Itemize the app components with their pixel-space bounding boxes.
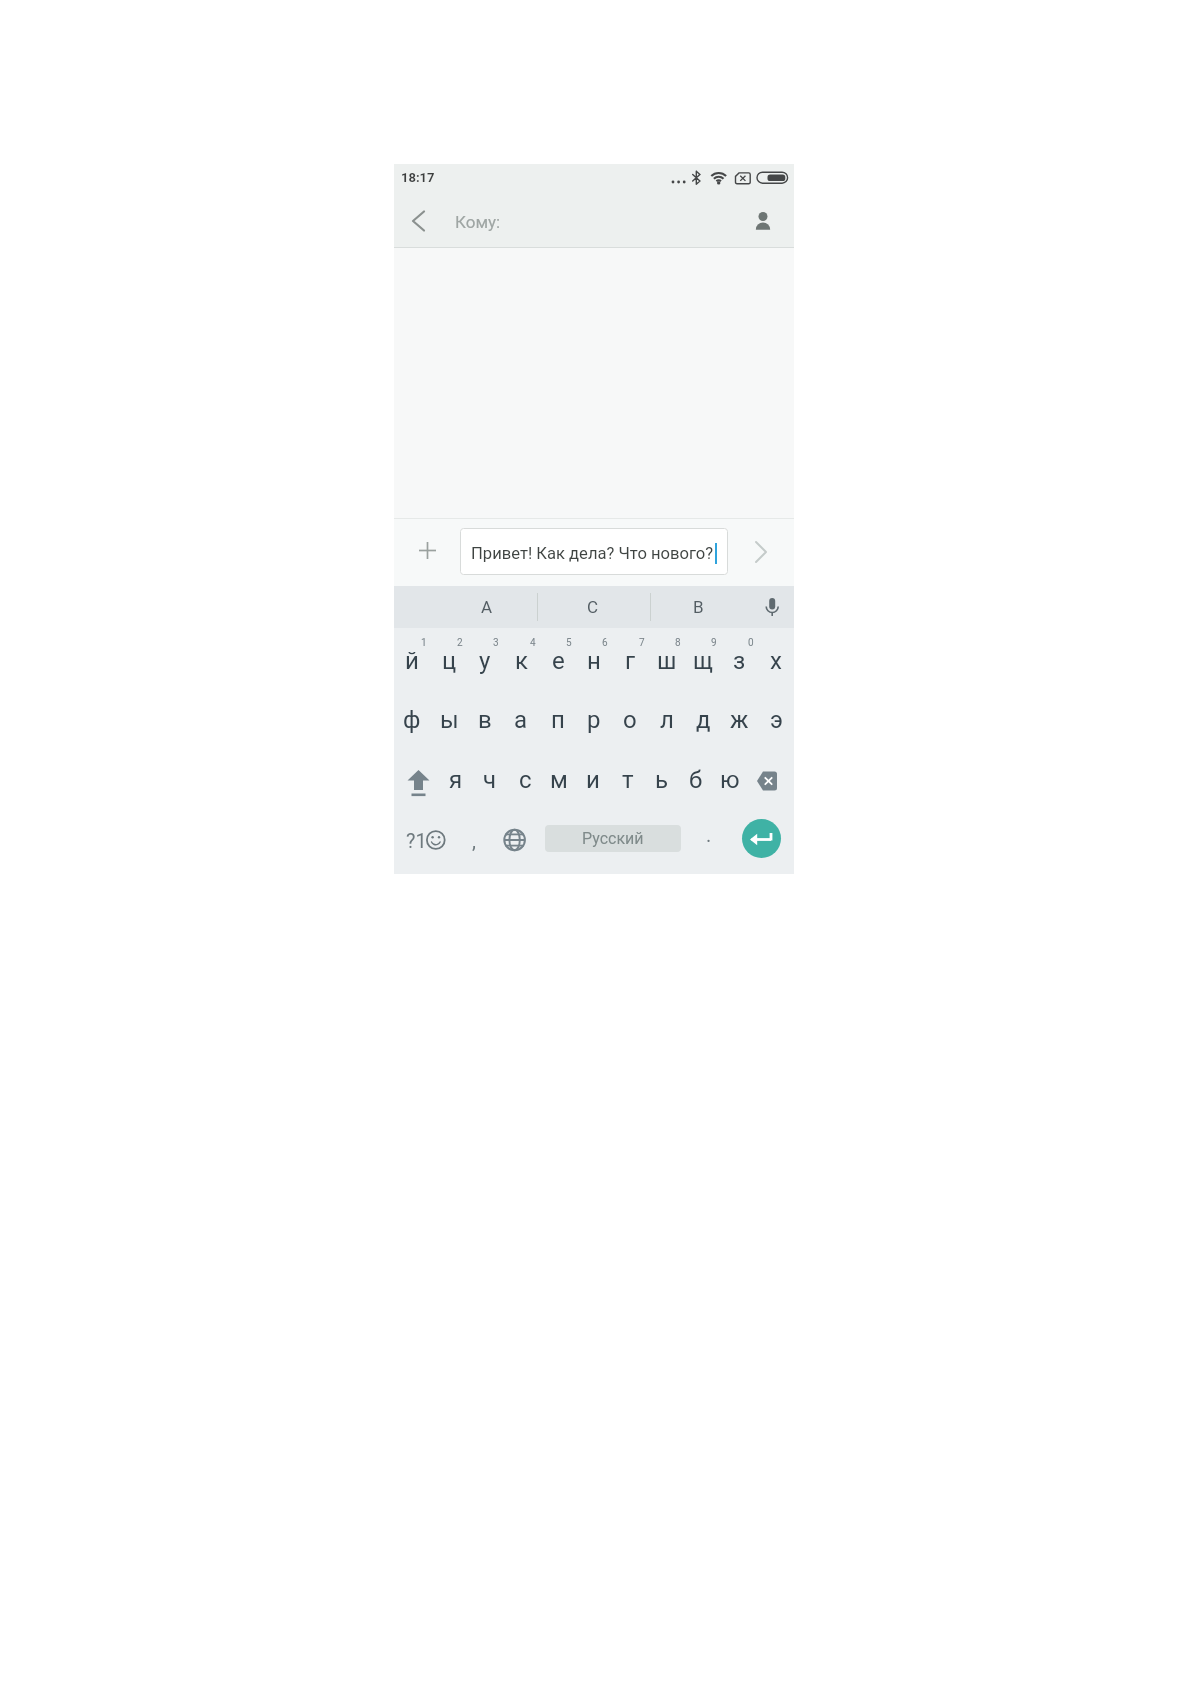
staticText: ц	[442, 647, 457, 675]
staticText: ф	[403, 706, 421, 734]
staticText: а	[514, 706, 528, 734]
button[interactable]: В	[658, 586, 738, 628]
staticText: ш	[657, 647, 677, 675]
button[interactable]: л	[649, 696, 685, 744]
button[interactable]: з	[721, 637, 757, 685]
button[interactable]	[402, 200, 434, 242]
staticText: ж	[730, 706, 749, 734]
staticText: и	[586, 766, 600, 794]
button[interactable]: Русский	[545, 825, 681, 852]
staticText: м	[550, 766, 568, 794]
staticText: я	[449, 766, 463, 794]
button[interactable]: а	[503, 696, 539, 744]
button[interactable]: ш	[649, 637, 685, 685]
button[interactable]: с	[508, 756, 542, 804]
staticText: С	[587, 597, 599, 617]
button[interactable]	[398, 758, 440, 802]
staticText: А	[481, 597, 493, 617]
button[interactable]: р	[576, 696, 612, 744]
staticText: д	[696, 706, 711, 734]
button[interactable]: ц	[431, 637, 467, 685]
staticText: о	[623, 706, 637, 734]
staticText: х	[770, 647, 782, 675]
staticText: ь	[655, 766, 669, 794]
button[interactable]: А	[437, 586, 537, 628]
staticText: 4	[530, 637, 536, 649]
button[interactable]	[746, 758, 788, 802]
staticText: Привет! Как дела? Что нового?	[471, 544, 714, 563]
button[interactable]: в	[467, 696, 503, 744]
staticText: 5	[566, 637, 572, 649]
staticText: 6	[602, 637, 608, 649]
button[interactable]: ?1	[396, 817, 450, 861]
staticText: в	[478, 706, 492, 734]
button[interactable]	[742, 819, 781, 858]
button[interactable]: и	[576, 756, 610, 804]
button[interactable]: х	[758, 637, 794, 685]
staticText: г	[625, 647, 636, 675]
button[interactable]: ж	[721, 696, 757, 744]
button[interactable]: .	[694, 812, 724, 856]
staticText: 18:17	[401, 170, 435, 185]
staticText: 0	[748, 637, 754, 649]
button[interactable]: й	[394, 637, 430, 685]
staticText: Кому:	[455, 212, 501, 232]
button[interactable]: н	[576, 637, 612, 685]
staticText: 7	[639, 637, 645, 649]
staticText: Русский	[582, 829, 644, 848]
button[interactable]: ,	[459, 818, 489, 862]
staticText: л	[660, 706, 674, 734]
button[interactable]: ф	[394, 696, 430, 744]
button[interactable]: ч	[473, 756, 507, 804]
button[interactable]: д	[685, 696, 721, 744]
button[interactable]	[494, 818, 535, 860]
staticText: ?1	[406, 829, 427, 852]
button[interactable]	[746, 200, 780, 242]
staticText: п	[551, 706, 565, 734]
button[interactable]: С	[543, 586, 643, 628]
button[interactable]: е	[540, 637, 576, 685]
button[interactable]: к	[503, 637, 539, 685]
staticText: т	[622, 766, 634, 794]
button[interactable]: п	[540, 696, 576, 744]
staticText: ,	[472, 829, 476, 852]
button[interactable]: я	[439, 756, 473, 804]
button[interactable]: о	[612, 696, 648, 744]
staticText: 1	[421, 637, 427, 649]
button[interactable]: э	[758, 696, 794, 744]
staticText: В	[693, 597, 704, 617]
button[interactable]	[411, 534, 444, 567]
button[interactable]: м	[542, 756, 576, 804]
button[interactable]: у	[467, 637, 503, 685]
button[interactable]	[746, 537, 776, 567]
staticText: ч	[483, 766, 497, 794]
button[interactable]: т	[611, 756, 645, 804]
staticText: у	[479, 647, 491, 675]
staticText: з	[733, 647, 746, 675]
staticText: .	[706, 823, 712, 846]
staticText: ы	[440, 706, 459, 734]
button[interactable]: г	[612, 637, 648, 685]
staticText: б	[689, 766, 703, 794]
staticText: 2	[457, 637, 463, 649]
staticText: щ	[693, 647, 713, 675]
staticText: 3	[493, 637, 499, 649]
button[interactable]: Привет! Как дела? Что нового?	[460, 528, 728, 575]
button[interactable]: ю	[713, 756, 747, 804]
staticText: с	[519, 766, 532, 794]
button[interactable]	[754, 586, 792, 628]
staticText: й	[405, 647, 419, 675]
button[interactable]: ы	[431, 696, 467, 744]
staticText: 9	[711, 637, 717, 649]
staticText: е	[552, 647, 565, 675]
staticText: 8	[675, 637, 681, 649]
staticText: р	[587, 706, 601, 734]
staticText: к	[515, 647, 528, 675]
button[interactable]: щ	[685, 637, 721, 685]
staticText: э	[770, 706, 783, 734]
button[interactable]: ь	[645, 756, 679, 804]
staticText: ю	[720, 766, 740, 794]
button[interactable]: б	[679, 756, 713, 804]
staticText: н	[587, 647, 601, 675]
